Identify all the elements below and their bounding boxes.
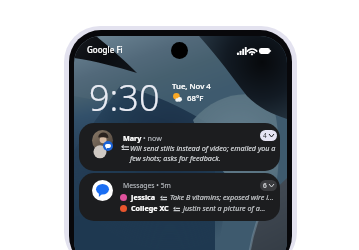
staticText: Take B vitamins; exposed wire i… bbox=[170, 192, 274, 202]
staticText: Messages • 5m bbox=[123, 181, 171, 190]
button[interactable]: Mary bbox=[79, 123, 280, 171]
staticText: Will send stills instead of video; email… bbox=[130, 143, 276, 163]
button[interactable]: Expand notification group bbox=[260, 130, 277, 141]
staticText: Justin sent a picture of a… bbox=[183, 203, 266, 213]
staticText: Google Fi bbox=[87, 44, 123, 55]
staticText: 68°F bbox=[187, 93, 204, 104]
staticText: College XC bbox=[131, 203, 169, 213]
staticText: • now bbox=[143, 133, 162, 143]
button[interactable]: Messages • 5m bbox=[79, 173, 280, 221]
staticText: Tue, Nov 4 bbox=[172, 81, 211, 92]
staticText: Jessica bbox=[131, 192, 156, 202]
staticText: 9:30 bbox=[89, 73, 160, 122]
staticText: 4 bbox=[263, 131, 267, 140]
button[interactable]: Expand notification group bbox=[260, 180, 277, 191]
staticText: 6 bbox=[263, 181, 267, 190]
staticText: Mary bbox=[123, 133, 142, 143]
